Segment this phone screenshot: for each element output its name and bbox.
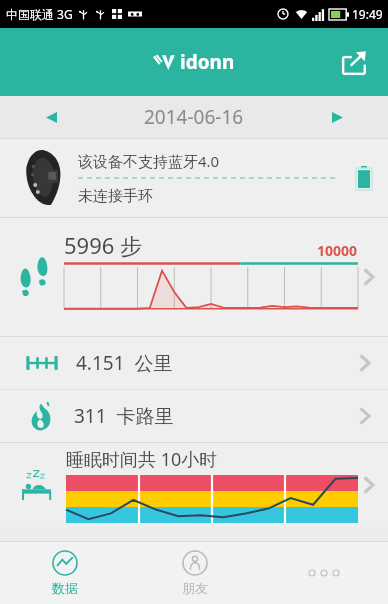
staticText: 数据	[52, 580, 78, 596]
button[interactable]: 该设备不支持蓝牙4.0	[0, 139, 388, 217]
staticText: 4.151 公里	[76, 350, 173, 376]
button[interactable]: More	[259, 542, 388, 604]
button[interactable]: 5996 步	[0, 218, 388, 336]
staticText: 19:49	[352, 6, 383, 22]
button[interactable]: Share	[334, 42, 374, 82]
button[interactable]: 睡眠时间共 10小时	[0, 443, 388, 527]
staticText: 未连接手环	[78, 187, 153, 206]
staticText: idonn	[180, 49, 235, 75]
button[interactable]: 朋友	[130, 542, 259, 604]
staticText: 5996 步	[64, 230, 143, 260]
button[interactable]: 数据	[0, 542, 130, 604]
button[interactable]: 311 卡路里	[0, 390, 388, 442]
button[interactable]: 4.151 公里	[0, 337, 388, 389]
button[interactable]: Previous day	[34, 100, 68, 134]
staticText: 朋友	[182, 580, 208, 596]
staticText: 该设备不支持蓝牙4.0	[78, 151, 220, 171]
button[interactable]: Next day	[320, 100, 354, 134]
staticText: 中国联通 3G	[6, 6, 73, 22]
staticText: 2014-06-16	[144, 104, 244, 130]
staticText: 10000	[317, 241, 358, 260]
staticText: 311 卡路里	[74, 403, 174, 429]
staticText: 睡眠时间共 10小时	[66, 447, 218, 472]
